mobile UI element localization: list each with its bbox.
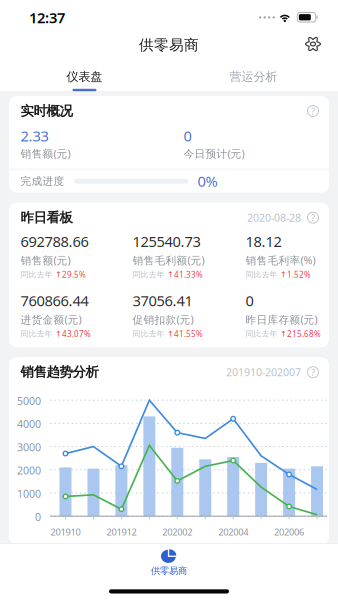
staticText: 同比去年 xyxy=(20,270,52,279)
staticText: 销售额(元) xyxy=(20,146,70,161)
staticText: 1.52% xyxy=(287,269,311,280)
staticText: 41.55% xyxy=(174,329,203,339)
staticText: 同比去年 xyxy=(20,329,52,339)
staticText: 仪表盘 xyxy=(66,69,102,84)
staticText: 0 xyxy=(35,510,41,524)
staticText: 201912 xyxy=(106,526,136,538)
staticText: 销售毛利率(%) xyxy=(245,253,315,267)
staticText: 760866.44 xyxy=(20,291,88,310)
button[interactable]: 仪表盘 xyxy=(0,64,169,88)
staticText: 实时概况 xyxy=(20,103,72,119)
staticText: 201910-202007 xyxy=(226,365,301,379)
button[interactable]: Settings xyxy=(300,31,326,57)
button[interactable]: 营运分析 xyxy=(169,64,338,88)
staticText: 37056.41 xyxy=(132,291,192,310)
staticText: 销售趋势分析 xyxy=(20,364,98,380)
staticText: 同比去年 xyxy=(245,329,277,339)
staticText: 进货金额(元) xyxy=(20,312,81,327)
staticText: 供零易商 xyxy=(151,565,187,577)
staticText: 昨日看板 xyxy=(20,209,72,226)
button[interactable]: Help xyxy=(307,212,319,224)
staticText: ↑ xyxy=(167,270,174,279)
staticText: ↑ xyxy=(55,270,62,279)
staticText: 完成进度 xyxy=(20,175,64,188)
staticText: 5000 xyxy=(17,394,41,408)
staticText: ? xyxy=(311,105,315,117)
staticText: 2020-08-28 xyxy=(247,211,301,225)
staticText: 29.5% xyxy=(62,269,86,280)
staticText: 供零易商 xyxy=(139,36,199,54)
button[interactable]: Help xyxy=(307,366,319,378)
staticText: ↑ xyxy=(280,329,287,338)
staticText: 销售额(元) xyxy=(20,253,70,267)
staticText: 0 xyxy=(183,126,191,145)
staticText: 18.12 xyxy=(245,232,281,251)
staticText: 1000 xyxy=(17,486,41,501)
staticText: 3000 xyxy=(17,440,41,454)
staticText: 2000 xyxy=(17,463,41,477)
staticText: 昨日库存额(元) xyxy=(245,312,317,327)
staticText: 692788.66 xyxy=(20,232,88,251)
staticText: 12:37 xyxy=(29,8,65,27)
staticText: ? xyxy=(311,366,315,378)
button[interactable]: 供零易商 xyxy=(0,544,338,577)
staticText: ? xyxy=(311,211,315,224)
staticText: ↑ xyxy=(280,270,287,279)
staticText: 215.68% xyxy=(287,329,321,339)
staticText: 2.33 xyxy=(20,126,48,145)
staticText: 促销扣款(元) xyxy=(132,312,193,327)
staticText: 同比去年 xyxy=(132,329,164,339)
staticText: 43.07% xyxy=(62,329,91,339)
staticText: 0 xyxy=(245,291,253,310)
staticText: 202004 xyxy=(218,526,248,538)
staticText: 销售毛利额(元) xyxy=(132,253,204,267)
staticText: 0% xyxy=(197,171,217,191)
staticText: 202002 xyxy=(162,526,192,538)
staticText: 营运分析 xyxy=(229,69,277,84)
staticText: 同比去年 xyxy=(132,270,164,279)
button[interactable]: Help xyxy=(307,105,319,117)
staticText: 41.33% xyxy=(174,269,203,280)
staticText: 125540.73 xyxy=(132,232,200,251)
staticText: 4000 xyxy=(17,417,41,431)
staticText: 今日预计(元) xyxy=(183,146,244,161)
staticText: 201910 xyxy=(50,526,80,538)
staticText: 同比去年 xyxy=(245,270,277,279)
staticText: ↑ xyxy=(55,329,62,338)
staticText: 202006 xyxy=(274,526,304,538)
staticText: ↑ xyxy=(167,329,174,338)
